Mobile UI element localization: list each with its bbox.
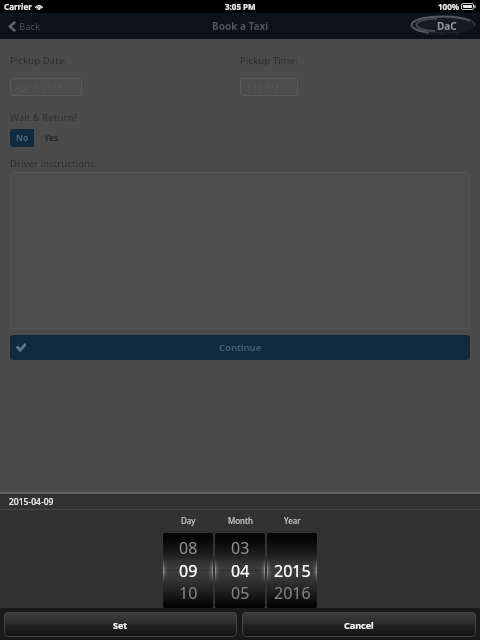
staticText: 05 — [231, 582, 250, 604]
other: Confirm — [16, 343, 26, 352]
staticText: Pickup Time: — [240, 54, 298, 67]
button[interactable]: Continue — [10, 335, 470, 360]
staticText: Day — [181, 515, 196, 526]
staticText: dialacab.co.uk — [426, 30, 460, 37]
staticText: 08 — [179, 537, 198, 559]
staticText: Back — [19, 20, 41, 33]
staticText: 09 — [179, 560, 198, 582]
button[interactable]: Set — [4, 612, 237, 637]
staticText: 100% — [438, 1, 459, 12]
staticText: Pickup Date: — [10, 54, 67, 67]
button[interactable]: 08 — [163, 533, 213, 608]
button[interactable]: Cancel — [242, 612, 476, 637]
staticText: 04 — [231, 560, 250, 582]
button[interactable]: Yes — [34, 129, 68, 147]
staticText: 2015 — [274, 560, 311, 582]
button[interactable]: 03 — [215, 533, 265, 608]
staticText: 2016 — [274, 582, 311, 604]
staticText: Book a Taxi — [212, 19, 269, 33]
staticText: Driver instructions: — [10, 157, 98, 170]
staticText: Year — [284, 515, 301, 526]
button[interactable]: No — [10, 129, 34, 147]
button[interactable]: Back — [7, 17, 43, 36]
staticText: No — [16, 132, 29, 144]
staticText: 3:05 PM — [225, 1, 256, 12]
staticText: Month — [228, 515, 253, 526]
staticText: DaC — [437, 19, 457, 33]
staticText: Yes — [44, 132, 59, 144]
staticText: Cancel — [344, 619, 374, 631]
other: Back — [9, 22, 15, 31]
staticText: Wait & Return? — [10, 111, 78, 124]
staticText: Continue — [219, 341, 262, 354]
staticText: Carrier — [4, 1, 32, 12]
staticText: 10 — [179, 582, 198, 604]
button[interactable]: 2015 — [267, 533, 317, 608]
staticText: 03 — [231, 537, 250, 559]
button[interactable]: Apr 9, 2015 — [10, 78, 82, 96]
button[interactable]: 3:10 PM — [240, 78, 298, 96]
staticText: 2015-04-09 — [9, 496, 54, 508]
staticText: Set — [113, 619, 128, 631]
